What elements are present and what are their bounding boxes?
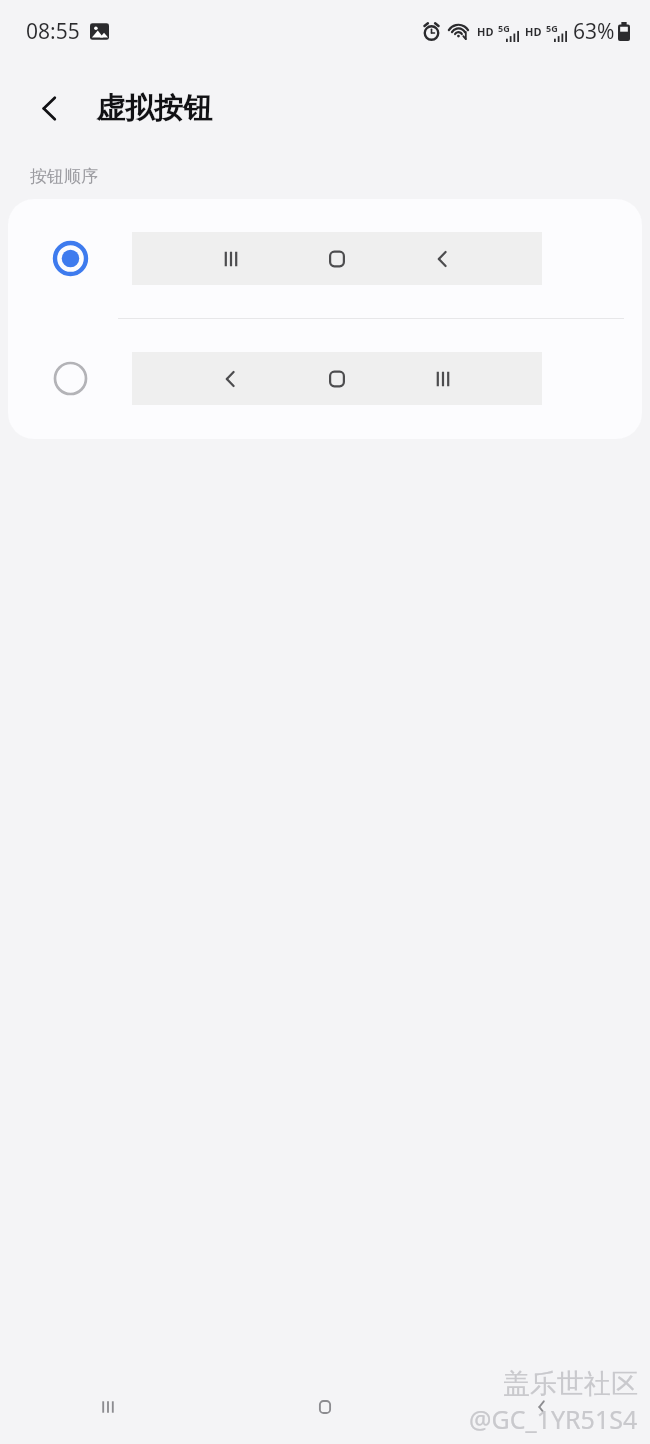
button[interactable]: Home	[216, 1370, 433, 1444]
button[interactable]: Back	[24, 82, 76, 134]
staticText: HD	[525, 24, 542, 39]
button[interactable]: Recents	[0, 1370, 216, 1444]
staticText: HD	[477, 24, 494, 39]
staticText: 5G	[498, 22, 510, 34]
staticText: 按钮顺序	[30, 166, 98, 187]
staticText: @GC_1YR51S4	[469, 1402, 638, 1436]
button[interactable]	[8, 199, 642, 318]
staticText: 盖乐世社区	[503, 1367, 638, 1401]
staticText: 5G	[546, 22, 558, 34]
button[interactable]	[8, 319, 642, 438]
staticText: 虚拟按钮	[96, 90, 212, 127]
staticText: 08:55	[26, 17, 80, 46]
staticText: 63%	[573, 17, 615, 46]
button[interactable]: Back	[433, 1370, 650, 1444]
